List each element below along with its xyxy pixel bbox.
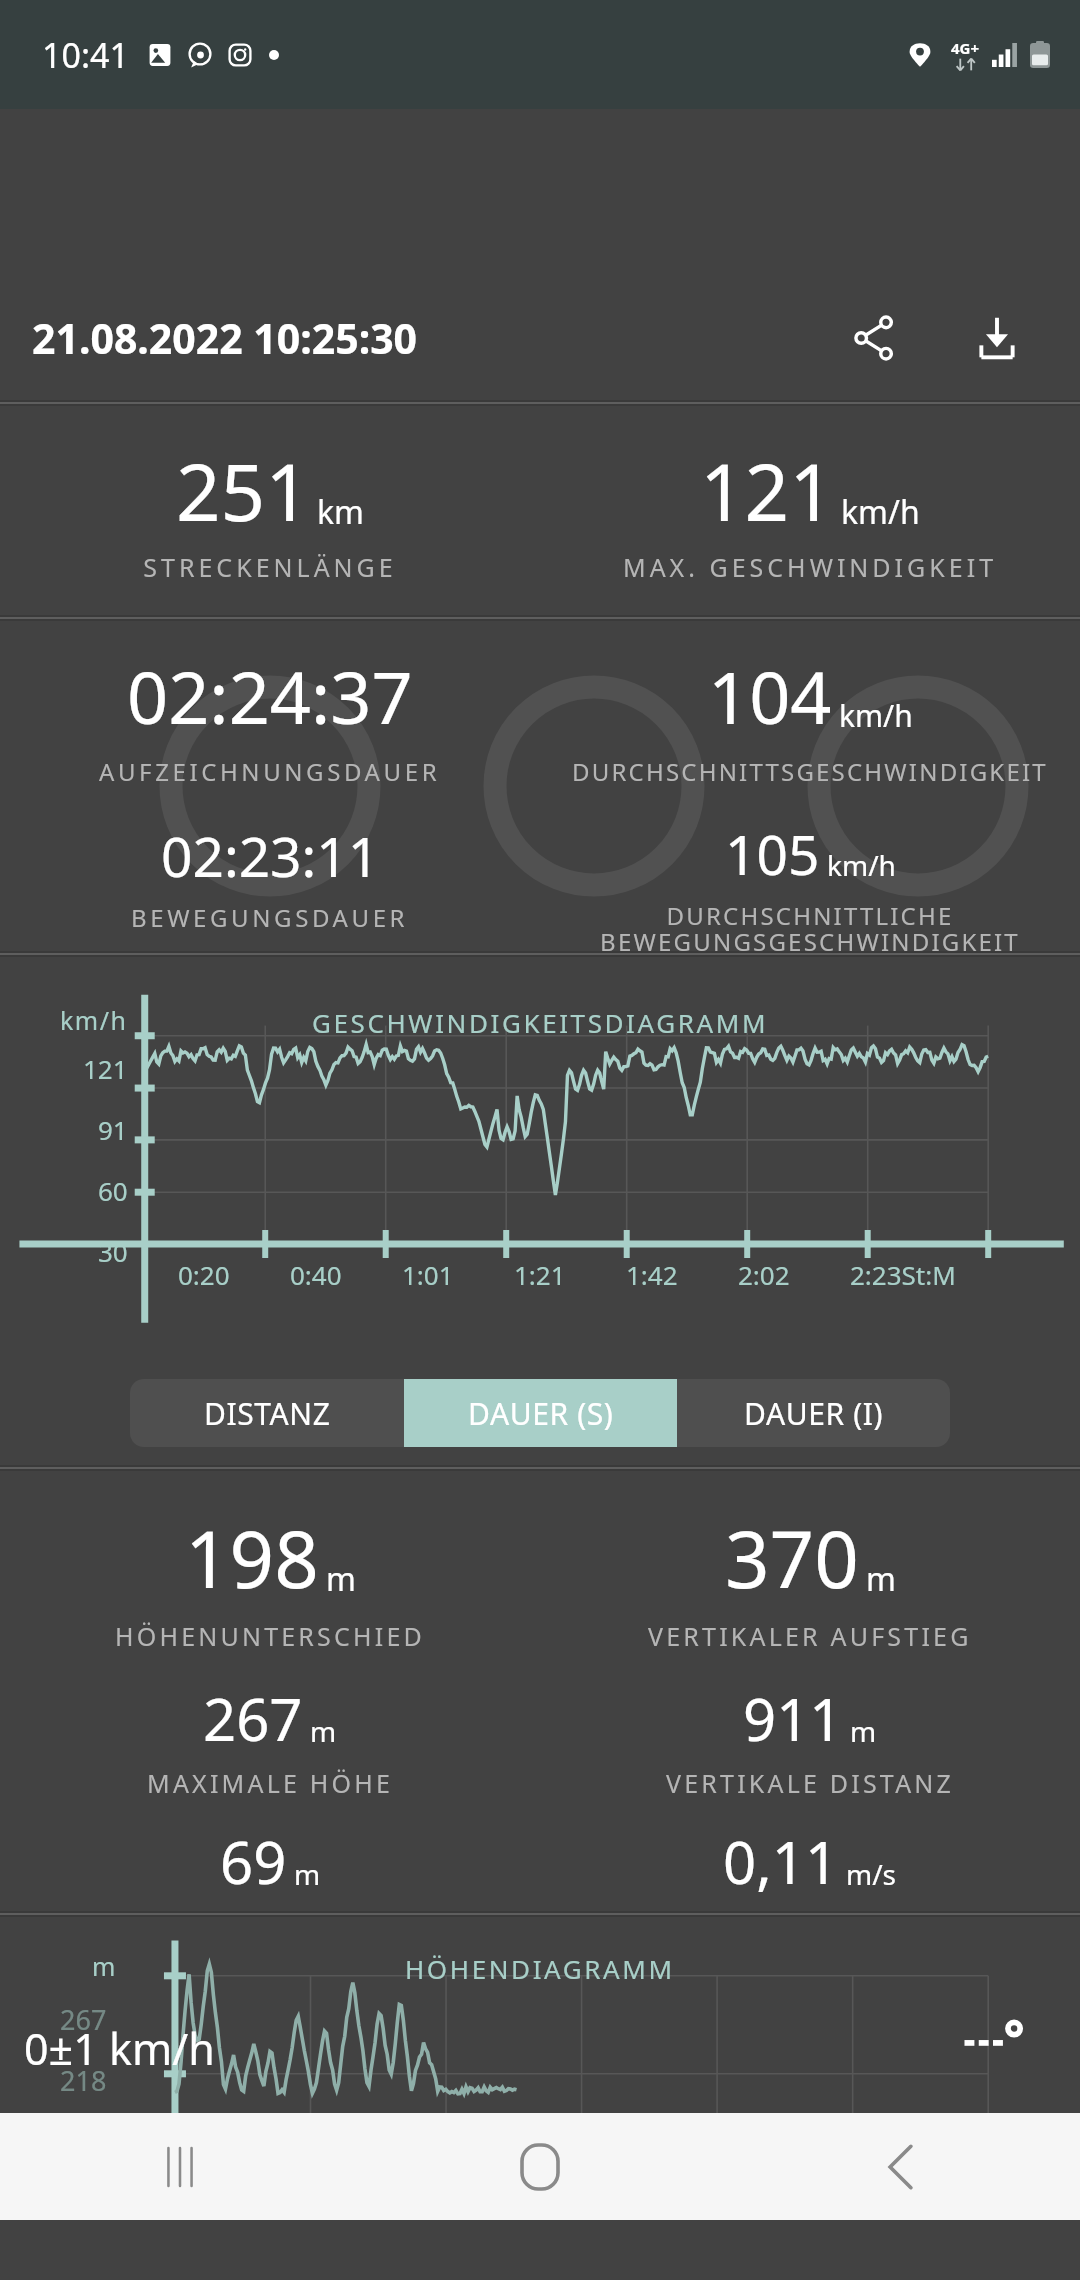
button[interactable]: Recents [0, 2113, 360, 2220]
button[interactable]: Back [720, 2113, 1080, 2220]
staticText: 1:01 [402, 1257, 514, 1292]
staticText: 69 [220, 1822, 287, 1901]
staticText: 10:41 [42, 32, 129, 78]
staticText: VERTIKALER AUFSTIEG [648, 1619, 972, 1653]
staticText: 121 [700, 438, 834, 544]
staticText: 267 [203, 1679, 303, 1758]
staticText: 2:23St:M [850, 1257, 990, 1292]
staticText: 0:20 [178, 1257, 290, 1292]
staticText: DURCHSCHNITTSGESCHWINDIGKEIT [572, 755, 1048, 788]
staticText: 198 [185, 1505, 319, 1611]
staticText: 251 [176, 438, 310, 544]
staticText: HÖHENDIAGRAMM [405, 1951, 675, 1986]
staticText: km/h [841, 490, 920, 534]
staticText: 121 [83, 1051, 128, 1086]
staticText: DURCHSCHNITTLICHE BEWEGUNGSGESCHWINDIGKE… [540, 899, 1080, 951]
staticText: DAUER (S) [468, 1393, 614, 1434]
staticText: MAXIMALE HÖHE [147, 1766, 394, 1800]
staticText: 105 [725, 816, 820, 891]
staticText: 370 [725, 1505, 859, 1611]
staticText: m [310, 1712, 337, 1750]
staticText: HÖHENUNTERSCHIED [115, 1619, 425, 1653]
button[interactable]: Home [360, 2113, 720, 2220]
staticText: m [850, 1712, 877, 1750]
staticText: 02:24:37 [127, 647, 413, 745]
staticText: m [92, 1949, 116, 1983]
staticText: km/h [827, 846, 896, 884]
staticText: DAUER (I) [744, 1393, 884, 1434]
button[interactable]: DISTANZ [130, 1379, 404, 1447]
staticText: 911 [743, 1679, 843, 1758]
staticText: 0±1 km/h [24, 2019, 215, 2078]
staticText: 0,11 [723, 1822, 839, 1901]
staticText: 60 [98, 1173, 128, 1208]
staticText: 104 [708, 647, 832, 745]
staticText: m [294, 1855, 321, 1893]
staticText: 2:02 [738, 1257, 850, 1292]
staticText: 02:23:11 [161, 818, 380, 893]
staticText: km/h [839, 695, 913, 736]
staticText: 4G+ [951, 38, 980, 58]
staticText: 91 [98, 1112, 128, 1147]
staticText: km [317, 490, 365, 534]
staticText: STRECKENLÄNGE [6, 550, 534, 584]
staticText: MAX. GESCHWINDIGKEIT [546, 550, 1074, 584]
staticText: km/h [60, 1003, 128, 1037]
staticText: m/s [846, 1855, 897, 1893]
button[interactable]: Download [954, 295, 1040, 381]
staticText: DISTANZ [204, 1393, 331, 1434]
staticText: AUFZEICHNUNGSDAUER [99, 755, 441, 788]
staticText: GESCHWINDIGKEITSDIAGRAMM [312, 1005, 769, 1040]
button[interactable]: DAUER (S) [404, 1379, 677, 1447]
staticText: 21.08.2022 10:25:30 [32, 310, 418, 366]
staticText: m [866, 1557, 896, 1601]
staticText: BEWEGUNGSDAUER [131, 901, 409, 934]
staticText: m [326, 1557, 356, 1601]
button[interactable]: DAUER (I) [677, 1379, 950, 1447]
staticText: 1:42 [626, 1257, 738, 1292]
staticText: VERTIKALE DISTANZ [666, 1766, 955, 1800]
staticText: 0:40 [290, 1257, 402, 1292]
staticText: 267 [60, 2001, 107, 2038]
staticText: 30 [98, 1234, 128, 1269]
staticText: 1:21 [514, 1257, 626, 1292]
staticText: 218 [60, 2062, 107, 2099]
button[interactable]: Share [832, 295, 918, 381]
